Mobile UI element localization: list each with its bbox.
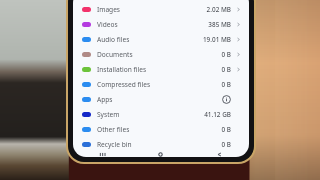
staticText: Installation files xyxy=(97,65,147,74)
button[interactable]: Other files xyxy=(73,122,249,137)
staticText: 2.02 MB xyxy=(206,5,231,14)
staticText: 0 B xyxy=(221,50,231,59)
button[interactable]: Installation files xyxy=(73,62,249,77)
staticText: Other files xyxy=(97,125,130,134)
staticText: System xyxy=(97,110,120,119)
button[interactable]: Back xyxy=(190,152,249,157)
staticText: 19.01 MB xyxy=(202,35,231,44)
staticText: Recycle bin xyxy=(97,140,132,149)
staticText: Videos xyxy=(97,20,118,29)
staticText: 0 B xyxy=(221,125,231,134)
button[interactable]: Apps xyxy=(73,92,249,107)
staticText: Audio files xyxy=(97,35,130,44)
staticText: Documents xyxy=(97,50,133,59)
button[interactable]: App info xyxy=(222,95,231,104)
staticText: 0 B xyxy=(221,80,231,89)
staticText: Apps xyxy=(97,95,113,104)
button[interactable]: Compressed files xyxy=(73,77,249,92)
staticText: Compressed files xyxy=(97,80,151,89)
button[interactable]: Home xyxy=(131,152,190,157)
staticText: Images xyxy=(97,5,121,14)
staticText: 0 B xyxy=(221,140,231,149)
button[interactable]: Videos xyxy=(73,17,249,32)
button[interactable]: Images xyxy=(73,2,249,17)
staticText: 385 MB xyxy=(208,20,231,29)
button[interactable]: Recycle bin xyxy=(73,137,249,152)
staticText: 0 B xyxy=(221,65,231,74)
button[interactable]: System xyxy=(73,107,249,122)
button[interactable]: Documents xyxy=(73,47,249,62)
button[interactable]: Audio files xyxy=(73,32,249,47)
staticText: 41.12 GB xyxy=(204,110,231,119)
button[interactable]: Recent apps xyxy=(73,152,131,157)
